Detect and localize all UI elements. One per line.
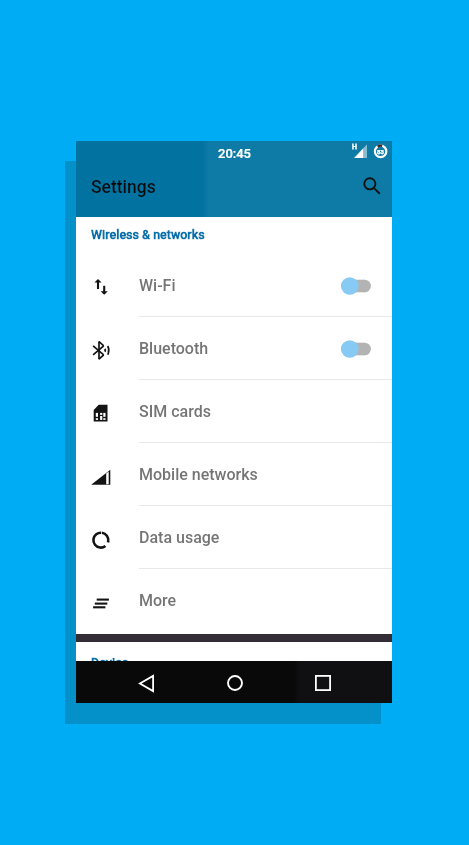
staticText: Bluetooth [139, 339, 209, 358]
staticText: 20:45 [218, 146, 251, 161]
button[interactable]: Wi-Fi [76, 254, 392, 317]
staticText: 83 [377, 148, 384, 155]
button[interactable]: More [76, 569, 392, 632]
button[interactable]: Mobile networks [76, 443, 392, 506]
button[interactable]: Search [358, 172, 386, 200]
button[interactable]: Home [213, 662, 257, 704]
button[interactable]: SIM cards [76, 380, 392, 443]
button[interactable]: Bluetooth switch [334, 334, 378, 364]
button[interactable]: Recent apps [301, 662, 345, 704]
staticText: More [139, 591, 177, 610]
staticText: H [352, 143, 357, 151]
staticText: Data usage [139, 528, 220, 547]
button[interactable]: Data usage [76, 506, 392, 569]
staticText: Device [91, 655, 129, 670]
button[interactable]: Wi-Fi switch [334, 271, 378, 301]
staticText: Settings [91, 177, 156, 198]
staticText: Mobile networks [139, 465, 258, 484]
button[interactable]: Back [124, 662, 168, 704]
staticText: Wi-Fi [139, 276, 176, 295]
button[interactable]: Bluetooth [76, 317, 392, 380]
staticText: SIM cards [139, 402, 211, 421]
staticText: Wireless & networks [91, 227, 205, 242]
